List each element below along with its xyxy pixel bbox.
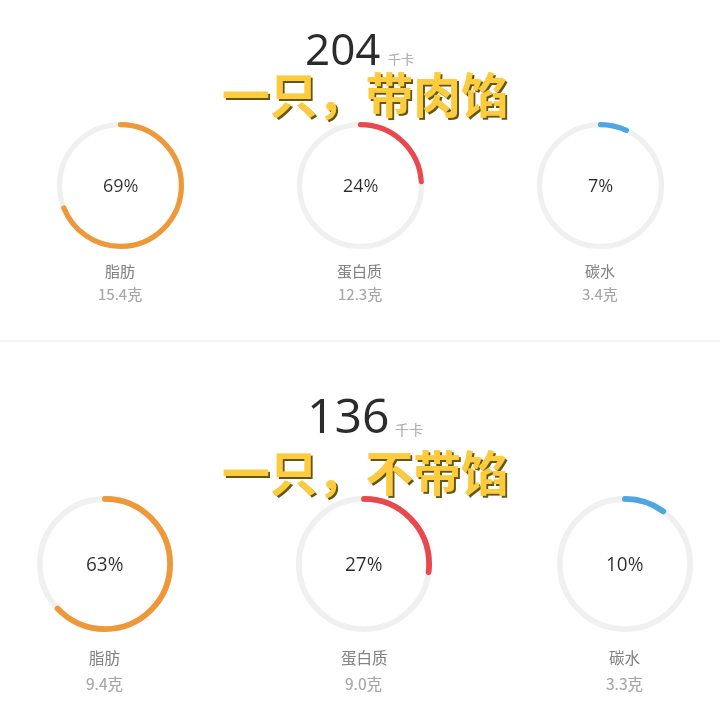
staticText: 3.3克: [606, 672, 644, 694]
staticText: 脂肪: [89, 646, 121, 668]
button[interactable]: 碳水 10% 3.3克: [555, 496, 695, 694]
button[interactable]: 脂肪 63% 9.4克: [35, 496, 175, 694]
staticText: 9.0克: [345, 672, 383, 694]
staticText: 千卡: [395, 419, 423, 439]
staticText: 蛋白质: [337, 260, 383, 282]
staticText: 一只，带肉馅: [224, 60, 511, 129]
staticText: 碳水: [609, 646, 641, 668]
staticText: 12.3克: [338, 283, 383, 305]
staticText: 69%: [103, 173, 139, 198]
staticText: 136: [307, 382, 390, 434]
staticText: 15.4克: [98, 283, 143, 305]
staticText: 10%: [606, 551, 644, 577]
button[interactable]: 蛋白质 24% 12.3克: [290, 122, 430, 304]
button[interactable]: 脂肪 69% 15.4克: [50, 122, 190, 304]
staticText: 一只，不带馅: [224, 438, 511, 507]
staticText: 3.4克: [582, 283, 618, 305]
staticText: 蛋白质: [341, 646, 388, 668]
staticText: 碳水: [585, 260, 616, 282]
staticText: 63%: [86, 551, 124, 577]
staticText: 24%: [343, 173, 379, 198]
staticText: 一只，带肉馅: [222, 58, 509, 127]
staticText: 204: [305, 18, 381, 68]
button[interactable]: 碳水 7% 3.4克: [530, 122, 670, 304]
staticText: 脂肪: [105, 260, 136, 282]
staticText: 9.4克: [86, 672, 124, 694]
staticText: 一只，不带馅: [222, 436, 509, 505]
staticText: 千卡: [388, 49, 415, 68]
staticText: 27%: [345, 551, 383, 577]
button[interactable]: 蛋白质 27% 9.0克: [294, 496, 434, 694]
staticText: 7%: [588, 173, 614, 198]
